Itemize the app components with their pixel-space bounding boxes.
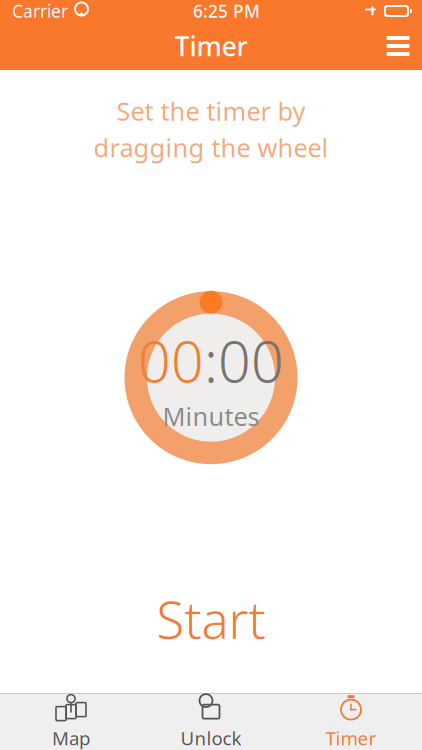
staticText: Map [52,726,90,750]
staticText: :00 [204,322,284,398]
staticText: Minutes [162,399,259,433]
staticText: 6:25 PM [193,0,260,22]
staticText: Timer [325,726,376,750]
button[interactable]: Unlock [141,694,281,750]
button[interactable]: Timer [281,694,421,750]
button[interactable]: Timer wheel, 00:00 minutes [123,290,299,466]
staticText: Timer [174,28,247,64]
button[interactable]: Map [1,694,141,750]
staticText: Start [156,585,265,653]
staticText: Unlock [180,726,241,750]
button[interactable]: Start [91,591,331,647]
staticText: Carrier [12,0,68,22]
staticText: dragging the wheel [93,131,328,164]
button[interactable]: Menu [374,22,422,70]
staticText: Set the timer by [116,94,305,128]
staticText: 00 [138,322,204,398]
